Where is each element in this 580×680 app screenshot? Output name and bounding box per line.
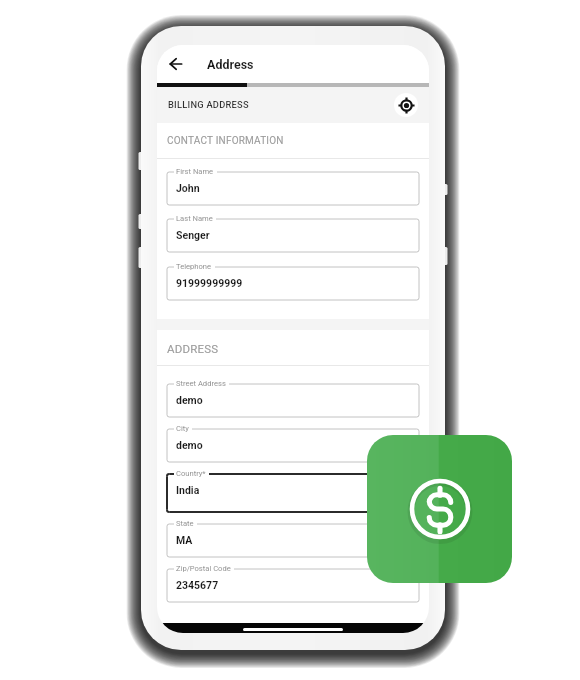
staticText: India bbox=[176, 484, 200, 496]
button[interactable]: Use current location bbox=[394, 93, 418, 117]
staticText: CONTACT INFORMATION bbox=[167, 135, 284, 147]
staticText: 2345677 bbox=[176, 579, 219, 591]
button[interactable]: 91999999999 bbox=[167, 267, 419, 300]
button[interactable]: MA bbox=[167, 524, 419, 557]
staticText: Senger bbox=[176, 229, 210, 241]
button[interactable]: Back bbox=[162, 50, 190, 78]
staticText: Address bbox=[207, 57, 254, 72]
button[interactable]: John bbox=[167, 172, 419, 205]
staticText: Telephone bbox=[176, 262, 212, 271]
staticText: Country* bbox=[176, 469, 206, 478]
button[interactable]: demo bbox=[167, 384, 419, 417]
staticText: demo bbox=[176, 394, 203, 406]
staticText: MA bbox=[176, 534, 193, 546]
staticText: demo bbox=[176, 439, 203, 451]
staticText: Last Name bbox=[176, 214, 213, 223]
staticText: Zip/Postal Code bbox=[176, 564, 231, 573]
staticText: City bbox=[176, 424, 189, 433]
staticText: BILLING ADDRESS bbox=[168, 99, 249, 110]
staticText: State bbox=[176, 519, 194, 528]
button[interactable]: India bbox=[167, 474, 419, 512]
button[interactable]: 2345677 bbox=[167, 569, 419, 602]
staticText: ADDRESS bbox=[167, 342, 219, 355]
staticText: Street Address bbox=[176, 379, 226, 388]
button[interactable]: Payment app bbox=[367, 435, 512, 583]
staticText: John bbox=[176, 182, 200, 194]
button[interactable]: demo bbox=[167, 429, 419, 462]
staticText: 91999999999 bbox=[176, 277, 243, 289]
button[interactable]: Senger bbox=[167, 219, 419, 252]
staticText: First Name bbox=[176, 167, 214, 176]
